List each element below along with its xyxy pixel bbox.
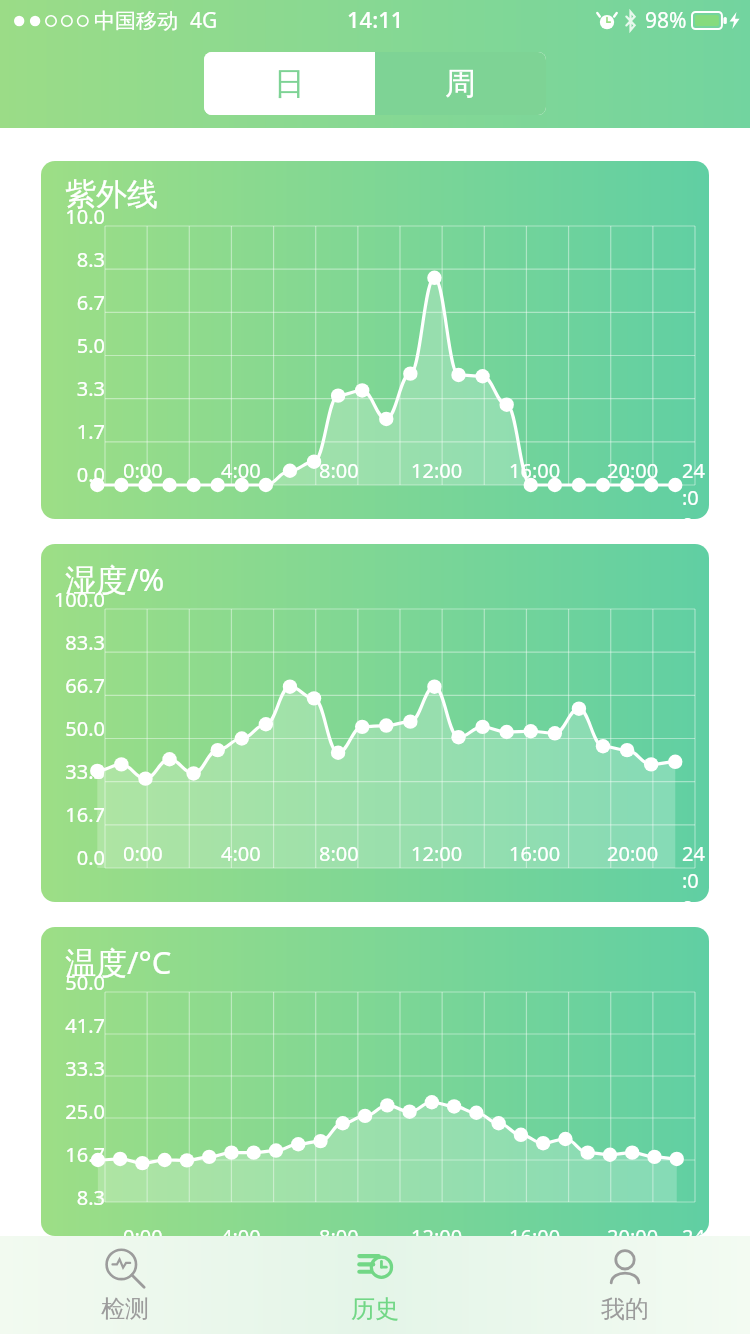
staticText: 4:00: [221, 1223, 261, 1236]
staticText: 中国移动: [94, 8, 178, 34]
staticText: 16.7: [65, 1141, 105, 1168]
staticText: 5.0: [76, 332, 105, 359]
button[interactable]: 日: [204, 52, 375, 115]
staticText: 检测: [101, 1294, 149, 1324]
staticText: 24:00: [682, 1223, 709, 1236]
staticText: 24:00: [682, 840, 709, 902]
staticText: 100.0: [53, 586, 105, 613]
staticText: 50.0: [65, 969, 105, 996]
staticText: 41.7: [65, 1012, 105, 1039]
staticText: 0.0: [76, 844, 105, 866]
button[interactable]: 紫外线: [41, 161, 709, 519]
staticText: 4G: [190, 6, 218, 35]
staticText: 98%: [645, 6, 687, 35]
staticText: 紫外线: [65, 175, 158, 214]
staticText: 10.0: [65, 203, 105, 230]
staticText: 20:00: [607, 840, 659, 867]
staticText: 3.3: [76, 375, 105, 402]
staticText: 8.3: [76, 1184, 105, 1211]
staticText: 0:00: [123, 1223, 163, 1236]
staticText: 8:00: [319, 840, 359, 867]
staticText: 24:00: [682, 457, 709, 519]
staticText: 50.0: [65, 715, 105, 742]
button[interactable]: 温度/°C: [41, 927, 709, 1236]
button[interactable]: 检测: [0, 1236, 250, 1334]
staticText: 6.7: [76, 289, 105, 316]
staticText: 我的: [601, 1294, 649, 1324]
staticText: 66.7: [65, 672, 105, 699]
staticText: 8:00: [319, 1223, 359, 1236]
staticText: 日: [274, 64, 305, 103]
staticText: 湿度/%: [65, 558, 165, 600]
staticText: 0.0: [76, 461, 105, 483]
staticText: 12:00: [411, 840, 463, 867]
staticText: 温度/°C: [65, 941, 172, 983]
button[interactable]: 周: [375, 52, 546, 115]
staticText: 12:00: [411, 457, 463, 484]
button[interactable]: 历史: [250, 1236, 500, 1334]
staticText: 4:00: [221, 840, 261, 867]
staticText: 20:00: [607, 457, 659, 484]
staticText: 16:00: [509, 457, 561, 484]
staticText: 8:00: [319, 457, 359, 484]
button[interactable]: 湿度/%: [41, 544, 709, 902]
staticText: 20:00: [607, 1223, 659, 1236]
staticText: 0:00: [123, 840, 163, 867]
staticText: 0:00: [123, 457, 163, 484]
staticText: 16:00: [509, 840, 561, 867]
staticText: 33.3: [65, 1055, 105, 1082]
staticText: 8.3: [76, 246, 105, 273]
staticText: 16.7: [65, 801, 105, 828]
staticText: 4:00: [221, 457, 261, 484]
staticText: 83.3: [65, 629, 105, 656]
staticText: 33.3: [65, 758, 105, 785]
button[interactable]: 我的: [500, 1236, 750, 1334]
staticText: 16:00: [509, 1223, 561, 1236]
staticText: 25.0: [65, 1098, 105, 1125]
staticText: 1.7: [76, 418, 105, 445]
staticText: 周: [445, 64, 476, 103]
staticText: 历史: [351, 1294, 399, 1324]
staticText: 14:11: [347, 4, 404, 34]
staticText: 12:00: [411, 1223, 463, 1236]
